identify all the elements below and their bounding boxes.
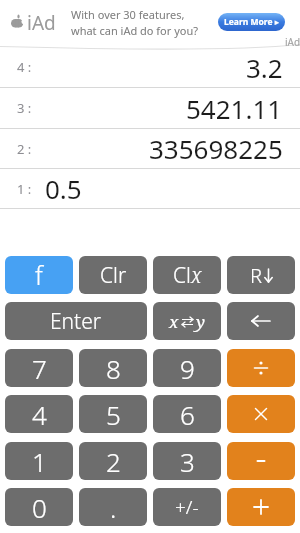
staticText: f [35,258,43,292]
button[interactable] [227,395,295,433]
staticText: Learn More ▸ [224,16,279,28]
staticText: 335698225 [149,131,283,166]
staticText: 4 : [17,58,32,76]
staticText: Clr [100,261,127,290]
staticText: Clx [173,261,202,290]
staticText: 3.2 [246,50,283,85]
button[interactable]: 6 [153,395,221,433]
button[interactable]: 7 [5,349,73,387]
staticText: 5421.11 [186,91,283,126]
button[interactable]: x [153,302,221,340]
button[interactable]: Clx [153,256,221,294]
staticText: 3 [180,444,195,479]
staticText: R [250,262,262,289]
staticText: . [110,490,117,525]
button[interactable]: 3 [153,442,221,480]
staticText: 2 [106,444,121,479]
button[interactable]: . [79,488,147,526]
button[interactable]: 5 [79,395,147,433]
button[interactable]: f [5,256,73,294]
button[interactable]: iAd [0,0,300,47]
staticText: 3 : [17,99,32,117]
button[interactable] [227,488,295,526]
staticText: 1 [32,444,47,479]
button[interactable] [227,302,295,340]
button[interactable]: Clr [79,256,147,294]
button[interactable]: Enter [5,302,147,340]
button[interactable]: R [227,256,295,294]
staticText: iAd [27,10,56,36]
button[interactable]: 0 [5,488,73,526]
staticText: 0 [32,490,47,525]
button[interactable]: 4 [5,395,73,433]
button[interactable]: 1 [5,442,73,480]
staticText: 8 [106,351,121,386]
staticText: iAd [285,35,300,49]
staticText: Enter [50,307,102,336]
button[interactable]: +/- [153,488,221,526]
staticText: +/- [175,494,199,520]
staticText: x [169,310,179,333]
staticText: 0.5 [45,171,82,206]
staticText: what can iAd do for you? [71,23,199,38]
button[interactable]: 8 [79,349,147,387]
staticText: 5 [106,397,121,432]
button[interactable]: 9 [153,349,221,387]
staticText: With over 30 features, [71,7,185,22]
staticText: 7 [32,351,47,386]
staticText: 6 [180,397,195,432]
button[interactable] [227,349,295,387]
staticText: 9 [180,351,195,386]
staticText: y [196,310,205,333]
staticText: 2 : [17,140,32,158]
button[interactable]: 2 [79,442,147,480]
staticText: 4 [32,397,47,432]
button[interactable] [227,442,295,480]
staticText: 1 : [17,180,32,198]
button[interactable]: Learn More ▸ [218,13,285,31]
